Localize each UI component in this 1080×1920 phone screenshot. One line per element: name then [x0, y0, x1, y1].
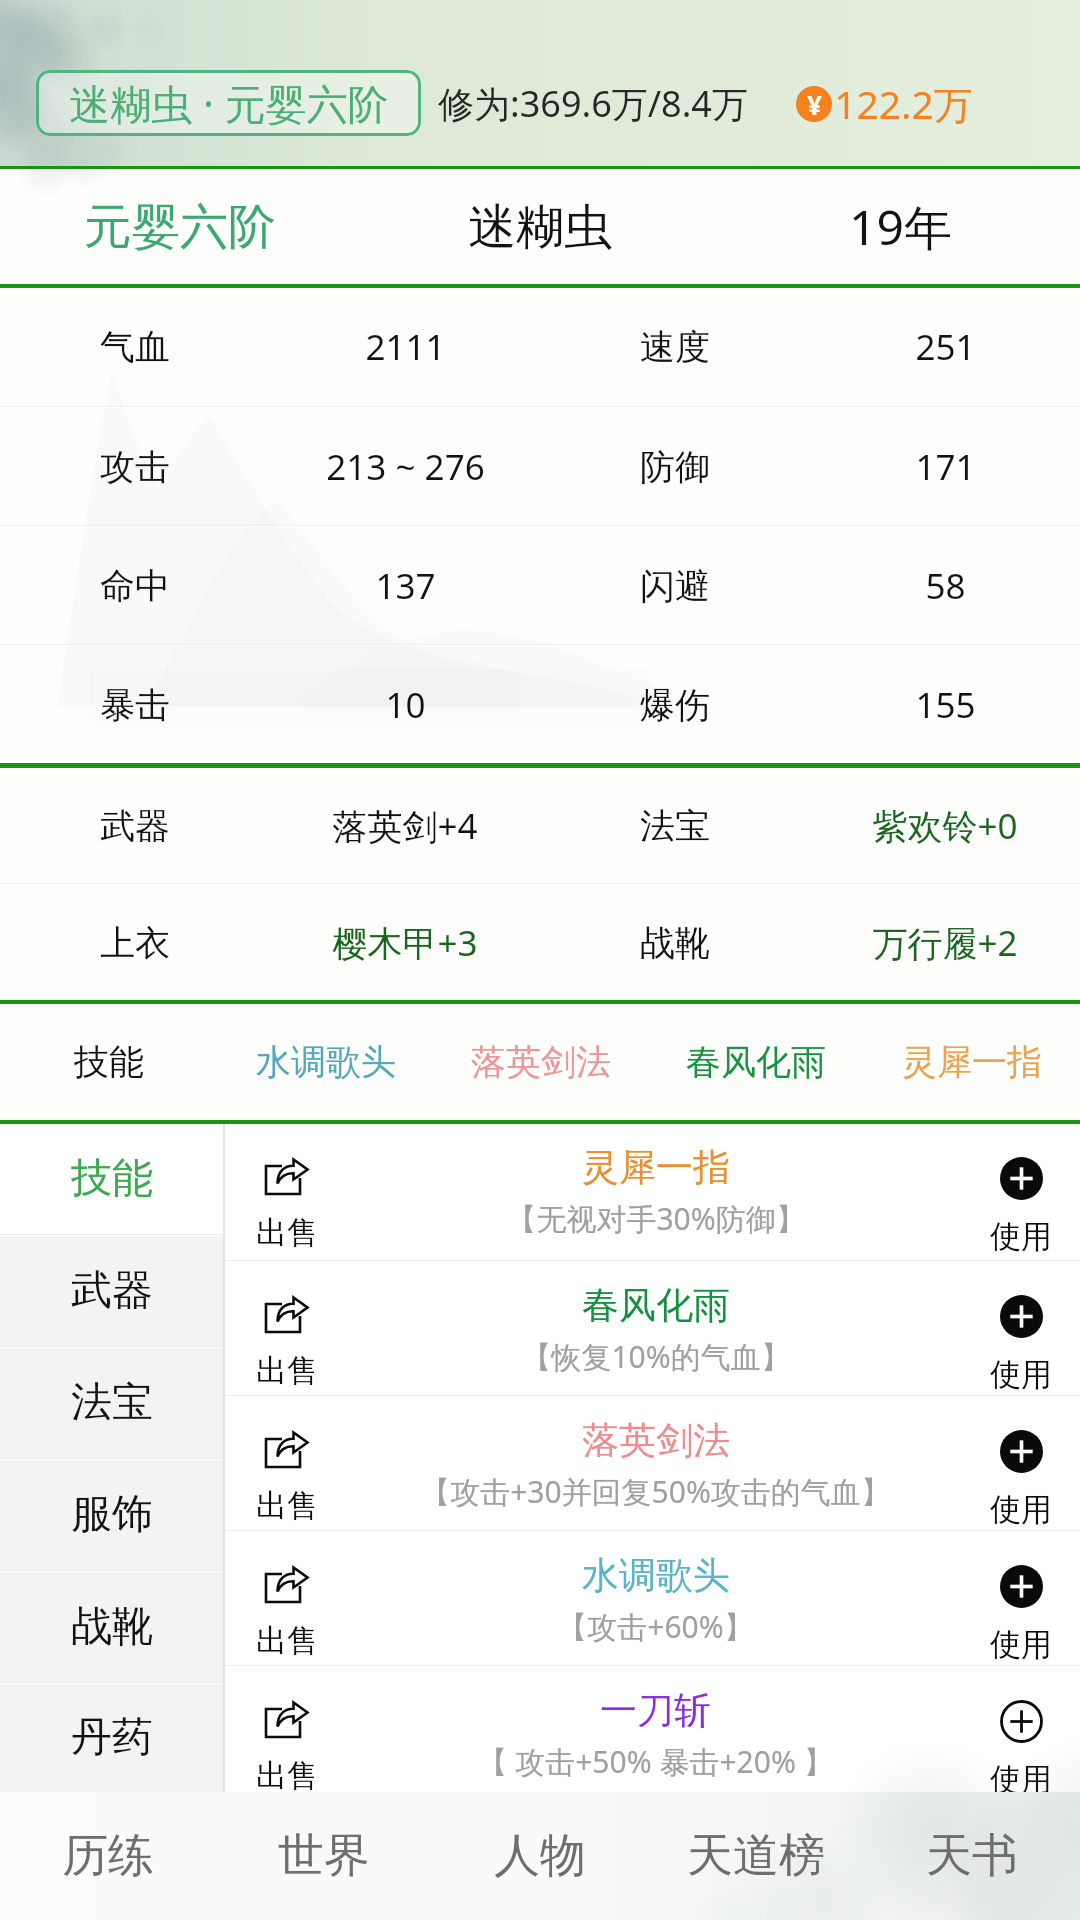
staticText: 137 [375, 562, 436, 610]
staticText: 爆伤 [640, 683, 710, 727]
button[interactable]: 法宝 [0, 1348, 223, 1458]
staticText: 水调歌头 [256, 1040, 396, 1084]
button[interactable]: 技能 [0, 1124, 223, 1234]
button[interactable]: 世界 [216, 1792, 432, 1920]
staticText: 155 [915, 681, 976, 729]
staticText: 闪避 [640, 564, 710, 608]
staticText: 战靴 [71, 1601, 153, 1653]
button[interactable]: 服饰 [0, 1460, 223, 1570]
staticText: 171 [915, 443, 976, 491]
other: Use [1000, 1700, 1043, 1743]
button[interactable]: 历练 [0, 1792, 216, 1920]
button[interactable]: 天道榜 [648, 1792, 864, 1920]
staticText: 暴击 [100, 683, 170, 727]
staticText: 万行履+2 [872, 919, 1018, 967]
button[interactable]: 迷糊虫 · 元婴六阶 [36, 70, 421, 136]
button[interactable]: Use [962, 1667, 1080, 1792]
staticText: 2111 [365, 323, 446, 371]
staticText: 122.2万 [834, 77, 973, 130]
staticText: 命中 [100, 564, 170, 608]
staticText: 使用 [990, 1217, 1052, 1256]
staticText: 攻击 [100, 445, 170, 489]
button[interactable]: 人物 [432, 1792, 648, 1920]
staticText: 一刀斩 [600, 1687, 711, 1734]
staticText: 213 ~ 276 [326, 443, 485, 491]
button[interactable]: Sell [225, 1397, 349, 1530]
staticText: 【恢复10%的气血】 [521, 1336, 791, 1377]
staticText: 落英剑+4 [332, 802, 478, 850]
staticText: 迷糊虫 · 元婴六阶 [69, 75, 389, 131]
staticText: 武器 [100, 804, 170, 848]
staticText: 19年 [849, 194, 952, 260]
staticText: 出售 [256, 1351, 318, 1390]
other: Sell [264, 1157, 310, 1199]
staticText: 修为:369.6万/8.4万 [438, 79, 748, 128]
staticText: 使用 [990, 1355, 1052, 1394]
staticText: 春风化雨 [582, 1282, 730, 1329]
staticText: 樱木甲+3 [332, 919, 478, 967]
staticText: 春风化雨 [686, 1040, 826, 1084]
staticText: 【攻击+60%】 [557, 1606, 754, 1647]
staticText: 10 [385, 681, 426, 729]
staticText: 气血 [100, 325, 170, 369]
staticText: 使用 [990, 1760, 1052, 1792]
button[interactable]: Use [962, 1124, 1080, 1260]
button[interactable]: 武器 [0, 1236, 223, 1346]
button[interactable]: Use [962, 1397, 1080, 1530]
other: Use [1000, 1430, 1043, 1473]
button[interactable]: Use [962, 1262, 1080, 1395]
staticText: 技能 [71, 1153, 153, 1205]
other: Sell [264, 1565, 310, 1607]
staticText: 丹药 [71, 1712, 153, 1764]
button[interactable]: Sell [225, 1124, 349, 1260]
staticText: 迷糊虫 [468, 197, 612, 257]
staticText: 【无视对手30%防御】 [506, 1198, 806, 1239]
button[interactable]: 战靴 [0, 1572, 223, 1682]
staticText: 出售 [256, 1621, 318, 1660]
staticText: 法宝 [71, 1377, 153, 1429]
staticText: 上衣 [100, 921, 170, 965]
staticText: 世界 [278, 1827, 370, 1885]
other: Use [1000, 1157, 1043, 1200]
button[interactable]: 天书 [864, 1792, 1080, 1920]
staticText: 战靴 [640, 921, 710, 965]
staticText: 使用 [990, 1490, 1052, 1529]
staticText: 元婴六阶 [84, 197, 276, 257]
staticText: 技能 [74, 1040, 144, 1084]
staticText: 251 [915, 323, 976, 371]
staticText: 法宝 [640, 804, 710, 848]
staticText: 人物 [494, 1827, 586, 1885]
staticText: 水调歌头 [582, 1552, 730, 1599]
other: Sell [264, 1700, 310, 1742]
staticText: 落英剑法 [471, 1040, 611, 1084]
staticText: 【 攻击+50% 暴击+20% 】 [477, 1741, 834, 1782]
staticText: 【攻击+30并回复50%攻击的气血】 [420, 1471, 891, 1512]
staticText: 紫欢铃+0 [872, 802, 1018, 850]
staticText: 使用 [990, 1625, 1052, 1664]
staticText: 天书 [926, 1827, 1018, 1885]
staticText: ¥ [807, 87, 822, 122]
staticText: 58 [925, 562, 966, 610]
button[interactable]: Use [962, 1532, 1080, 1665]
staticText: 天道榜 [687, 1827, 825, 1885]
other: Sell [264, 1430, 310, 1472]
button[interactable]: Sell [225, 1532, 349, 1665]
staticText: 灵犀一指 [582, 1144, 730, 1191]
staticText: 灵犀一指 [902, 1040, 1042, 1084]
other: Sell [264, 1295, 310, 1337]
staticText: 服饰 [71, 1489, 153, 1541]
other: Use [1000, 1565, 1043, 1608]
button[interactable]: Sell [225, 1262, 349, 1395]
staticText: 武器 [71, 1265, 153, 1317]
button[interactable]: 丹药 [0, 1684, 223, 1792]
staticText: 出售 [256, 1756, 318, 1792]
staticText: 速度 [640, 325, 710, 369]
staticText: 出售 [256, 1486, 318, 1525]
staticText: 落英剑法 [582, 1417, 730, 1464]
staticText: 防御 [640, 445, 710, 489]
staticText: 历练 [62, 1827, 154, 1885]
staticText: 出售 [256, 1213, 318, 1252]
other: Use [1000, 1295, 1043, 1338]
button[interactable]: Sell [225, 1667, 349, 1792]
